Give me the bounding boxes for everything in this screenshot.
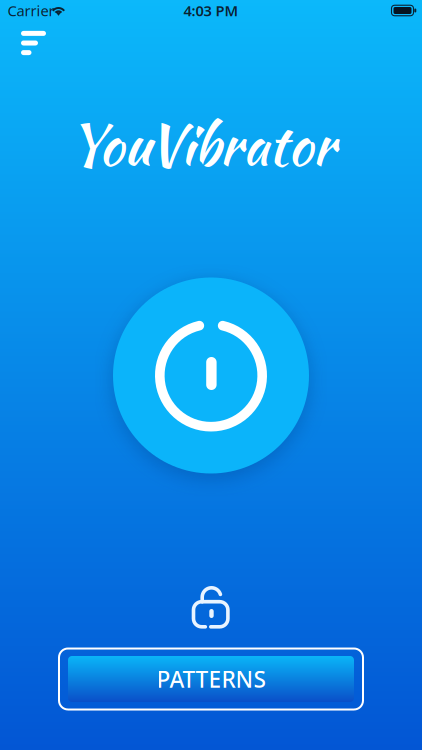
staticText: Carrier — [7, 1, 54, 20]
staticText: PATTERNS — [156, 664, 265, 694]
button[interactable]: Power — [113, 277, 309, 473]
staticText: YouVibrator — [68, 104, 335, 186]
button[interactable]: Unlock — [181, 576, 241, 638]
button[interactable]: PATTERNS — [59, 648, 363, 709]
button[interactable]: Menu — [0, 20, 67, 66]
staticText: 4:03 PM — [183, 1, 238, 20]
